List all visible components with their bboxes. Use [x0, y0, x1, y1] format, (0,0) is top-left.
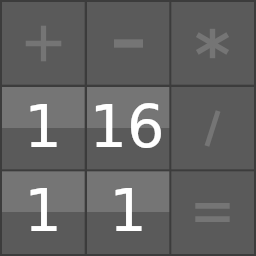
button[interactable]: Equals [171, 171, 254, 254]
button[interactable]: 1 [2, 87, 85, 170]
staticText: 1 [24, 176, 62, 245]
button[interactable]: Divide [171, 87, 254, 170]
button[interactable]: 16 [87, 87, 170, 170]
button[interactable]: 1 [2, 171, 85, 254]
button[interactable]: Plus [2, 2, 85, 85]
staticText: 16 [89, 92, 165, 161]
button[interactable]: Multiply [171, 2, 254, 85]
button[interactable]: 1 [87, 171, 170, 254]
staticText: 1 [109, 176, 147, 245]
staticText: 1 [24, 92, 62, 161]
button[interactable]: Minus [87, 2, 170, 85]
